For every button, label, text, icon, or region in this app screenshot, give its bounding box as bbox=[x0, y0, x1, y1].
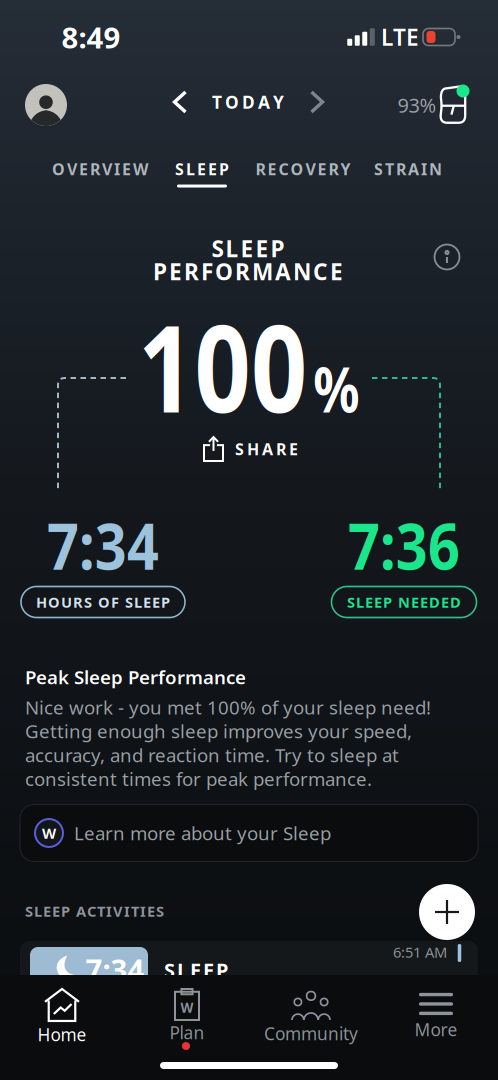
button[interactable]: About Sleep Performance bbox=[434, 244, 459, 269]
staticText: S L E E P bbox=[211, 233, 284, 263]
button[interactable]: Share bbox=[198, 431, 304, 467]
button[interactable]: S T R A I N bbox=[368, 152, 448, 186]
staticText: H O U R S O F S L E E P bbox=[36, 592, 170, 612]
button[interactable]: More bbox=[386, 983, 486, 1045]
staticText: S H A R E bbox=[235, 438, 298, 460]
button[interactable]: Next day bbox=[303, 84, 330, 120]
staticText: Peak Sleep Performance bbox=[25, 665, 246, 689]
button[interactable]: R E C O V E R Y bbox=[249, 152, 356, 186]
staticText: W bbox=[42, 823, 56, 843]
button[interactable]: O V E R V I E W bbox=[46, 152, 154, 186]
button[interactable]: Add activity bbox=[419, 884, 475, 940]
staticText: R E C O V E R Y bbox=[255, 158, 350, 180]
button[interactable]: W bbox=[20, 804, 478, 861]
staticText: accuracy, and reaction time. Try to slee… bbox=[25, 742, 399, 767]
button[interactable]: S L E E P bbox=[169, 152, 235, 186]
button[interactable]: Home bbox=[12, 984, 112, 1046]
staticText: 7:34 bbox=[38, 502, 167, 587]
staticText: Community bbox=[264, 1022, 358, 1045]
staticText: LTE bbox=[381, 22, 419, 52]
staticText: More bbox=[414, 1018, 457, 1041]
staticText: Home bbox=[37, 1023, 86, 1046]
staticText: 6:51 AM bbox=[393, 942, 447, 962]
button[interactable]: H O U R S O F S L E E P bbox=[21, 586, 185, 617]
staticText: S L E E P A C T I V I T I E S bbox=[25, 901, 164, 921]
button[interactable]: Profile bbox=[25, 84, 67, 126]
staticText: 8:49 bbox=[61, 17, 120, 56]
staticText: T O D A Y bbox=[212, 90, 284, 113]
staticText: 93% bbox=[397, 92, 436, 118]
staticText: Getting enough sleep improves your speed… bbox=[25, 719, 412, 743]
staticText: Nice work - you met 100% of your sleep n… bbox=[25, 695, 431, 720]
staticText: S T R A I N bbox=[374, 158, 442, 180]
staticText: S L E E P bbox=[164, 957, 228, 983]
staticText: % bbox=[327, 347, 384, 430]
button[interactable]: S L E E P N E E D E D bbox=[331, 586, 476, 617]
button[interactable]: Previous day bbox=[166, 84, 193, 120]
staticText: S L E E P N E E D E D bbox=[347, 592, 461, 612]
button[interactable]: Plan bbox=[137, 983, 237, 1045]
staticText: 7:34 bbox=[85, 949, 144, 988]
button[interactable]: Sleep activity 7:34 bbox=[0, 0, 498, 1080]
staticText: P E R F O R M A N C E bbox=[153, 256, 343, 287]
button[interactable]: Community bbox=[256, 984, 366, 1046]
staticText: W bbox=[180, 999, 193, 1016]
staticText: S L E E P bbox=[175, 158, 229, 180]
staticText: consistent times for peak performance. bbox=[25, 766, 372, 791]
staticText: Learn more about your Sleep bbox=[74, 821, 331, 845]
staticText: Plan bbox=[169, 1021, 204, 1044]
staticText: O V E R V I E W bbox=[52, 158, 148, 180]
staticText: 100 bbox=[113, 286, 320, 446]
staticText: 7:36 bbox=[339, 502, 468, 587]
